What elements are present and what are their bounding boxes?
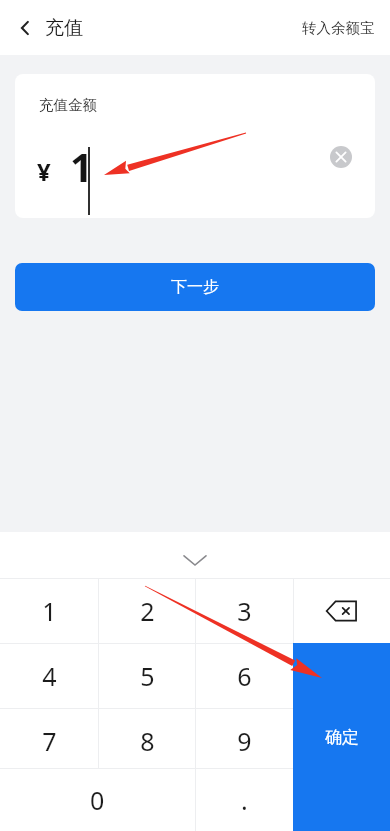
staticText: 下一步 — [171, 277, 219, 297]
staticText: 5 — [140, 659, 155, 693]
button[interactable]: 3 — [195, 578, 293, 643]
button[interactable]: 8 — [98, 708, 196, 773]
staticText: 充值金额 — [39, 96, 97, 114]
staticText: 2 — [140, 594, 155, 628]
staticText: 3 — [237, 594, 252, 628]
staticText: 转入余额宝 — [302, 19, 375, 37]
staticText: 4 — [42, 659, 57, 693]
button[interactable]: 确定 — [293, 643, 390, 831]
staticText: 8 — [140, 724, 155, 758]
button[interactable]: Backspace — [293, 578, 390, 643]
button[interactable]: 1 — [0, 578, 98, 643]
staticText: 充值 — [45, 16, 83, 40]
staticText: . — [241, 783, 248, 817]
staticText: 7 — [42, 724, 57, 758]
button[interactable]: 下一步 — [15, 263, 375, 311]
button[interactable]: 5 — [98, 643, 196, 708]
button[interactable]: Clear amount — [325, 141, 357, 173]
staticText: 9 — [237, 724, 252, 758]
button[interactable]: . — [195, 768, 293, 831]
staticText: 确定 — [325, 727, 359, 748]
staticText: 1 — [42, 594, 57, 628]
staticText: ¥ — [37, 155, 51, 188]
button[interactable]: 2 — [98, 578, 196, 643]
button[interactable]: 7 — [0, 708, 98, 773]
button[interactable]: Back — [6, 9, 44, 47]
staticText: 6 — [237, 659, 252, 693]
staticText: 0 — [90, 783, 105, 817]
button[interactable]: 9 — [195, 708, 293, 773]
button[interactable]: 6 — [195, 643, 293, 708]
button[interactable]: 0 — [0, 768, 195, 831]
button[interactable]: 转入余额宝 — [287, 11, 390, 45]
button[interactable]: Hide keyboard — [173, 542, 217, 578]
staticText: 1 — [70, 139, 93, 193]
button[interactable]: 4 — [0, 643, 98, 708]
